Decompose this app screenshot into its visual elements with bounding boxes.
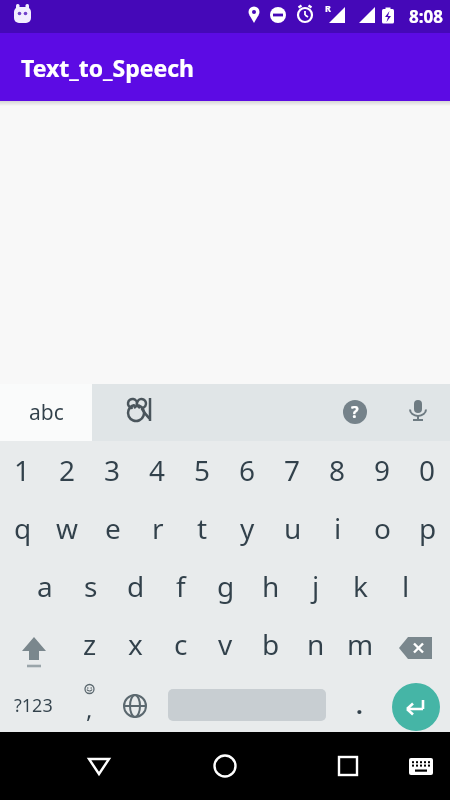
staticText: d — [127, 567, 145, 605]
staticText: k — [353, 567, 368, 605]
button[interactable] — [401, 746, 441, 786]
staticText: b — [262, 625, 280, 663]
staticText: r — [152, 509, 164, 547]
staticText: e — [105, 509, 121, 547]
button[interactable]: b — [248, 615, 293, 673]
staticText: abc — [29, 398, 64, 427]
staticText: i — [334, 509, 342, 547]
staticText: 8 — [329, 451, 346, 489]
staticText: h — [262, 567, 280, 605]
button[interactable]: 7 — [270, 441, 315, 499]
button[interactable]: abc — [0, 384, 92, 441]
button[interactable]: p — [405, 499, 450, 557]
staticText: f — [176, 567, 186, 605]
button[interactable]: v — [203, 615, 248, 673]
staticText: z — [83, 625, 97, 663]
button[interactable] — [116, 390, 164, 430]
staticText: x — [128, 625, 143, 663]
staticText: u — [284, 509, 302, 547]
button[interactable]: , — [67, 673, 112, 732]
staticText: o — [374, 509, 391, 547]
button[interactable] — [324, 742, 372, 790]
staticText: g — [217, 567, 235, 605]
button[interactable]: e — [90, 499, 135, 557]
button[interactable]: 6 — [225, 441, 270, 499]
button[interactable]: t — [180, 499, 225, 557]
staticText: q — [14, 509, 32, 547]
button[interactable]: d — [113, 557, 158, 615]
button[interactable]: 3 — [90, 441, 135, 499]
staticText: 0 — [419, 451, 436, 489]
button[interactable]: h — [248, 557, 293, 615]
staticText: 4 — [149, 451, 166, 489]
staticText: m — [347, 625, 374, 663]
staticText: y — [240, 509, 255, 547]
button[interactable]: g — [203, 557, 248, 615]
button[interactable]: m — [338, 615, 383, 673]
button[interactable]: . — [337, 673, 382, 732]
button[interactable]: j — [293, 557, 338, 615]
button[interactable]: o — [360, 499, 405, 557]
staticText: j — [312, 567, 320, 605]
button[interactable]: n — [293, 615, 338, 673]
button[interactable]: 2 — [45, 441, 90, 499]
button[interactable]: 8 — [315, 441, 360, 499]
staticText: . — [356, 688, 363, 721]
button[interactable]: q — [0, 499, 45, 557]
staticText: Text_to_Speech — [21, 52, 194, 83]
button[interactable]: w — [45, 499, 90, 557]
button[interactable]: i — [315, 499, 360, 557]
button[interactable]: z — [67, 615, 113, 673]
button[interactable]: 1 — [0, 441, 45, 499]
staticText: 8:08 — [409, 5, 443, 28]
button[interactable]: x — [113, 615, 158, 673]
staticText: 3 — [104, 451, 121, 489]
button[interactable]: 0 — [405, 441, 450, 499]
staticText: t — [197, 509, 208, 547]
button[interactable]: a — [22, 557, 68, 615]
button[interactable]: f — [158, 557, 203, 615]
staticText: l — [402, 567, 410, 605]
button[interactable] — [0, 615, 67, 673]
button[interactable]: y — [225, 499, 270, 557]
staticText: 6 — [239, 451, 256, 489]
button[interactable]: u — [270, 499, 315, 557]
button[interactable] — [404, 398, 432, 426]
staticText: v — [218, 625, 233, 663]
staticText: 5 — [194, 451, 211, 489]
button[interactable] — [201, 742, 249, 790]
staticText: w — [56, 509, 79, 547]
button[interactable]: k — [338, 557, 383, 615]
staticText: s — [84, 567, 98, 605]
button[interactable] — [383, 615, 450, 673]
staticText: , — [86, 692, 93, 725]
button[interactable] — [75, 742, 123, 790]
button[interactable]: r — [135, 499, 180, 557]
staticText: R — [325, 2, 331, 14]
button[interactable]: 9 — [360, 441, 405, 499]
staticText: 1 — [14, 451, 31, 489]
button[interactable]: ? — [343, 400, 367, 424]
staticText: n — [307, 625, 325, 663]
button[interactable]: ?123 — [0, 673, 67, 732]
button[interactable] — [112, 673, 157, 732]
button[interactable] — [382, 673, 450, 732]
staticText: 7 — [284, 451, 301, 489]
button[interactable]: s — [68, 557, 113, 615]
staticText: 9 — [374, 451, 391, 489]
button[interactable]: 4 — [135, 441, 180, 499]
staticText: 2 — [59, 451, 76, 489]
staticText: ?123 — [14, 693, 53, 718]
staticText: p — [419, 509, 437, 547]
button[interactable]: 5 — [180, 441, 225, 499]
staticText: ? — [351, 401, 359, 423]
button[interactable]: l — [383, 557, 428, 615]
button[interactable]: c — [158, 615, 203, 673]
staticText: a — [37, 567, 53, 605]
staticText: c — [174, 625, 188, 663]
